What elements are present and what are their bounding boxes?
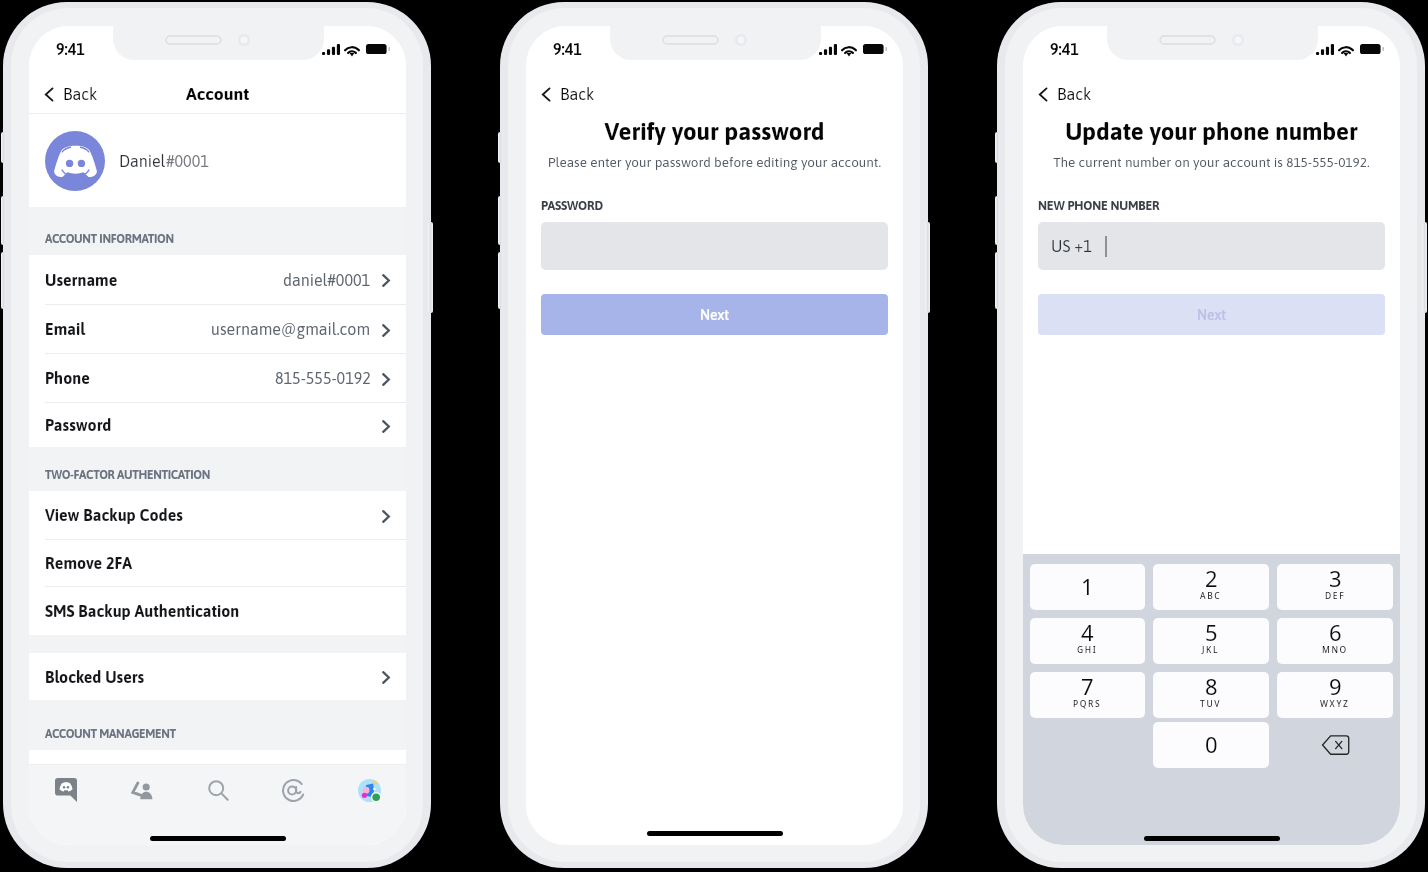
button[interactable]: SMS Backup Authentication bbox=[29, 587, 406, 635]
staticText: TUV bbox=[1200, 698, 1222, 710]
button[interactable]: Daniel bbox=[29, 114, 406, 207]
button[interactable]: 4 bbox=[1030, 618, 1145, 664]
staticText: Verify your password bbox=[526, 118, 903, 146]
button[interactable]: Home bbox=[37, 766, 95, 814]
button[interactable]: Password bbox=[29, 403, 406, 447]
staticText: Daniel bbox=[119, 152, 166, 170]
staticText: Please enter your password before editin… bbox=[530, 154, 899, 169]
button[interactable]: 8 bbox=[1153, 672, 1269, 718]
staticText: Phone bbox=[45, 369, 90, 387]
staticText: GHI bbox=[1077, 644, 1098, 656]
staticText: Back bbox=[63, 85, 98, 103]
staticText: ABC bbox=[1200, 590, 1222, 602]
staticText: Next bbox=[1197, 307, 1227, 323]
button[interactable]: Profile bbox=[340, 766, 398, 814]
staticText: The current number on your account is 81… bbox=[1027, 154, 1396, 169]
button[interactable]: 7 bbox=[1030, 672, 1145, 718]
staticText: 815-555-0192 bbox=[275, 369, 371, 387]
staticText: Back bbox=[1057, 85, 1092, 103]
staticText: View Backup Codes bbox=[45, 506, 183, 524]
staticText: 5 bbox=[1205, 618, 1218, 647]
button[interactable]: Remove 2FA bbox=[29, 540, 406, 586]
staticText: Blocked Users bbox=[45, 668, 145, 686]
staticText: #0001 bbox=[166, 152, 209, 170]
staticText: 7 bbox=[1081, 672, 1094, 701]
staticText: 3 bbox=[1329, 564, 1342, 593]
staticText: NEW PHONE NUMBER bbox=[1038, 198, 1160, 212]
staticText: 8 bbox=[1205, 672, 1218, 701]
staticText: DEF bbox=[1325, 590, 1346, 602]
button[interactable]: Friends bbox=[113, 766, 171, 814]
button[interactable]: Email bbox=[29, 305, 406, 353]
button[interactable]: Back bbox=[526, 78, 605, 110]
button[interactable]: Search bbox=[189, 766, 247, 814]
button[interactable]: Mentions bbox=[264, 766, 322, 814]
staticText: WXYZ bbox=[1320, 698, 1350, 710]
button[interactable]: Next bbox=[541, 294, 888, 335]
button[interactable]: Back bbox=[1023, 78, 1102, 110]
staticText: JKL bbox=[1202, 644, 1220, 656]
button[interactable]: 0 bbox=[1153, 722, 1269, 768]
staticText: MNO bbox=[1322, 644, 1348, 656]
staticText: 2 bbox=[1205, 564, 1218, 593]
staticText: Password bbox=[45, 416, 112, 434]
staticText: Next bbox=[700, 307, 730, 323]
button[interactable]: Username bbox=[29, 255, 406, 304]
button[interactable]: Back bbox=[29, 78, 108, 110]
staticText: 9:41 bbox=[553, 40, 582, 58]
button[interactable]: Phone bbox=[29, 354, 406, 402]
staticText: Username bbox=[45, 271, 118, 289]
staticText: ACCOUNT MANAGEMENT bbox=[45, 727, 176, 741]
staticText: Account bbox=[186, 84, 250, 104]
staticText: username@gmail.com bbox=[211, 320, 371, 338]
staticText: daniel#0001 bbox=[283, 271, 371, 289]
button[interactable]: View Backup Codes bbox=[29, 491, 406, 539]
staticText: Email bbox=[45, 320, 86, 338]
button[interactable]: 5 bbox=[1153, 618, 1269, 664]
staticText: US +1 bbox=[1051, 237, 1092, 255]
staticText: 9:41 bbox=[56, 40, 85, 58]
staticText: 9 bbox=[1329, 672, 1342, 701]
staticText: 1 bbox=[1081, 571, 1094, 601]
staticText: ACCOUNT INFORMATION bbox=[45, 232, 174, 246]
staticText: 6 bbox=[1329, 618, 1342, 647]
staticText: SMS Backup Authentication bbox=[45, 602, 240, 620]
button[interactable]: Blocked Users bbox=[29, 653, 406, 700]
staticText: PASSWORD bbox=[541, 198, 603, 212]
staticText: PQRS bbox=[1073, 698, 1102, 710]
staticText: 9:41 bbox=[1050, 40, 1079, 58]
staticText: 0 bbox=[1205, 729, 1218, 759]
button[interactable]: Backspace bbox=[1273, 722, 1397, 768]
button[interactable]: 3 bbox=[1277, 564, 1393, 610]
button[interactable]: 1 bbox=[1030, 564, 1145, 610]
button[interactable]: US +1 bbox=[1038, 222, 1385, 270]
staticText: Remove 2FA bbox=[45, 554, 133, 572]
staticText: TWO-FACTOR AUTHENTICATION bbox=[45, 468, 211, 482]
staticText: Update your phone number bbox=[1023, 118, 1400, 146]
staticText: Back bbox=[560, 85, 595, 103]
staticText: 4 bbox=[1081, 618, 1094, 647]
button[interactable]: 6 bbox=[1277, 618, 1393, 664]
button[interactable]: 2 bbox=[1153, 564, 1269, 610]
button[interactable]: 9 bbox=[1277, 672, 1393, 718]
